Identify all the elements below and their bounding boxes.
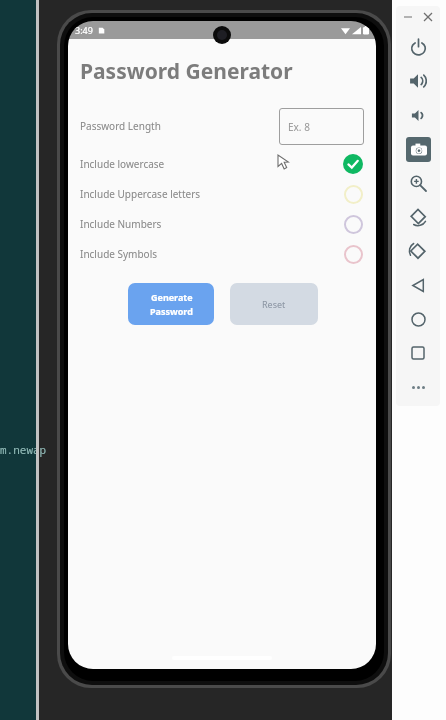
button[interactable]: Include lowercase (80, 149, 364, 179)
button[interactable]: Home (401, 302, 435, 336)
button[interactable]: Minimize (401, 10, 415, 24)
button[interactable]: Volume down (401, 98, 435, 132)
staticText: m.newap (0, 442, 47, 457)
staticText: Reset (262, 298, 286, 310)
staticText: Generate (151, 291, 193, 303)
staticText: Include lowercase (80, 157, 165, 171)
button[interactable]: More (401, 370, 435, 404)
staticText: Include Numbers (80, 217, 162, 231)
button[interactable]: Back (401, 268, 435, 302)
button[interactable]: Include Symbols (80, 239, 364, 269)
button[interactable]: Rotate left (401, 200, 435, 234)
button[interactable]: Rotate right (401, 234, 435, 268)
staticText: Ex. 8 (288, 120, 310, 134)
staticText: Include Symbols (80, 247, 158, 261)
button[interactable]: Overview (401, 336, 435, 370)
staticText: m.newap (0, 442, 47, 457)
button[interactable]: Include Numbers (80, 209, 364, 239)
button[interactable]: Ex. 8 (279, 108, 364, 145)
staticText: 3:49 (75, 24, 93, 36)
button[interactable]: Include Uppercase letters (80, 179, 364, 209)
staticText: Password Length (80, 119, 161, 133)
button[interactable]: Zoom (401, 166, 435, 200)
button[interactable]: Power (401, 30, 435, 64)
button[interactable]: Generate (128, 283, 214, 325)
button[interactable]: Take screenshot (401, 132, 435, 166)
button[interactable]: Reset (230, 283, 318, 325)
button[interactable]: Volume up (401, 64, 435, 98)
staticText: Password Generator (80, 57, 293, 86)
staticText: Password (150, 305, 193, 317)
staticText: Include Uppercase letters (80, 187, 201, 201)
button[interactable]: Close (421, 10, 435, 24)
